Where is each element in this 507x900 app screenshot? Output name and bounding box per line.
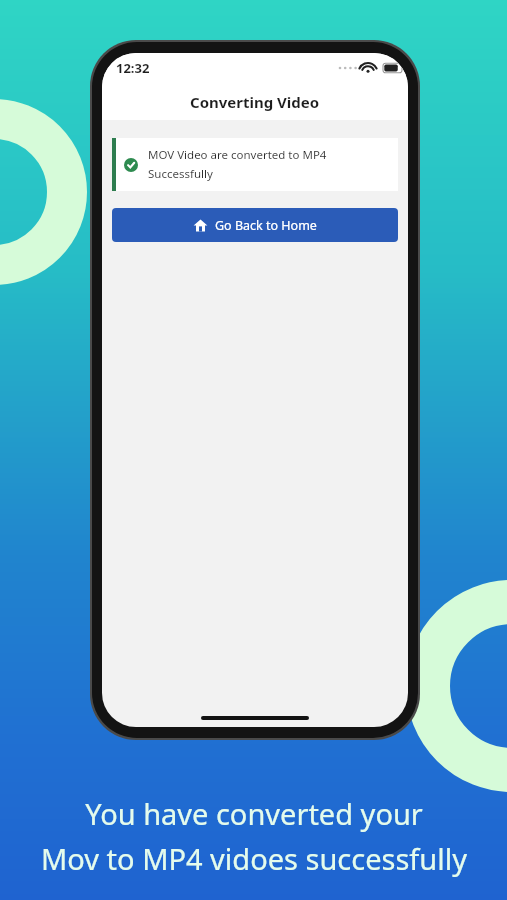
- staticText: MOV Video are converted to MP4: [148, 147, 327, 163]
- staticText: Mov to MP4 vidoes successfully: [41, 839, 467, 878]
- staticText: Successfully: [148, 166, 213, 182]
- staticText: 12:32: [116, 59, 150, 77]
- staticText: You have converted your: [85, 794, 423, 833]
- other: Home: [193, 218, 208, 233]
- staticText: Go Back to Home: [215, 217, 317, 234]
- staticText: Converting Video: [190, 92, 320, 112]
- button[interactable]: MOV Video are converted to MP4: [112, 138, 398, 191]
- button[interactable]: Home: [112, 208, 398, 242]
